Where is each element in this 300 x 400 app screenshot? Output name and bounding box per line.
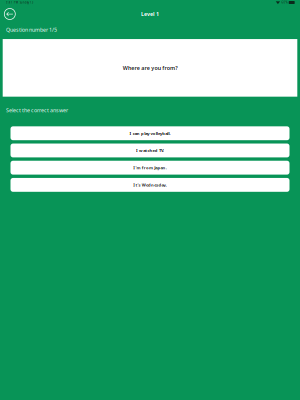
staticText: I can play volleyball. (129, 130, 171, 136)
button[interactable]: I watched TV. (10, 143, 289, 157)
button[interactable]: I can play volleyball. (10, 126, 289, 140)
staticText: Select the correct answer (6, 107, 68, 114)
button[interactable]: It's Wednesday. (10, 178, 289, 192)
staticText: 9:41 PM Sunday 13 (6, 1, 34, 4)
button[interactable]: Back (2, 6, 17, 21)
staticText: Level 1 (141, 10, 159, 18)
button[interactable]: I'm from Japan. (10, 161, 289, 175)
staticText: Where are you from? (123, 64, 177, 71)
staticText: I'm from Japan. (133, 165, 167, 170)
staticText: Question number 1/5 (6, 26, 57, 33)
staticText: I watched TV. (136, 148, 164, 153)
staticText: It's Wednesday. (133, 182, 167, 188)
staticText: 60% (281, 1, 287, 4)
